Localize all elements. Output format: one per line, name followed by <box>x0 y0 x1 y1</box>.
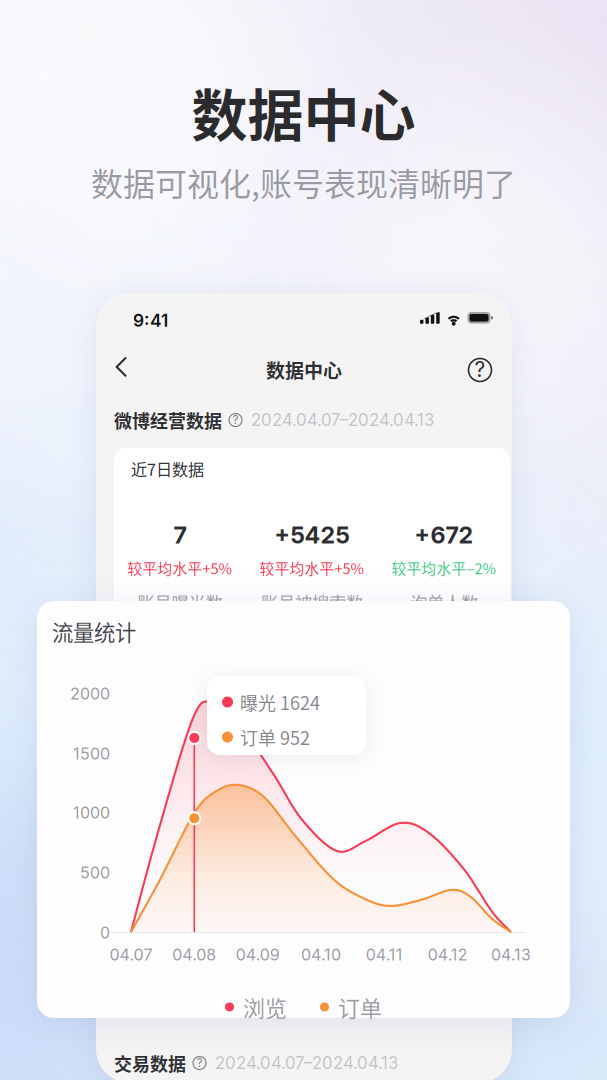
staticText: 2024.04.07–2024.04.13 <box>215 1053 398 1073</box>
staticText: 7 <box>173 521 186 549</box>
button[interactable]: Back <box>99 345 143 389</box>
staticText: ? <box>474 357 485 382</box>
staticText: 浏览 <box>243 991 287 1023</box>
staticText: 账号曝光数 <box>137 589 222 615</box>
staticText: 04.13 <box>491 945 531 964</box>
staticText: 0 <box>100 923 110 942</box>
staticText: 数据可视化,账号表现清晰明了 <box>91 159 516 205</box>
staticText: 04.08 <box>172 945 216 964</box>
staticText: 2024.04.07–2024.04.13 <box>251 410 434 430</box>
staticText: 1500 <box>73 744 110 763</box>
staticText: 订单 952 <box>240 724 310 750</box>
staticText: 订单 <box>338 991 382 1023</box>
staticText: 微博经营数据 <box>114 407 222 433</box>
button[interactable]: Help <box>458 348 502 392</box>
staticText: 近7日数据 <box>131 457 204 480</box>
staticText: 较平均水平+5% <box>259 557 364 578</box>
staticText: 流量统计 <box>52 616 136 647</box>
staticText: 04.12 <box>428 945 468 964</box>
staticText: 2000 <box>70 684 110 703</box>
staticText: 04.09 <box>236 945 280 964</box>
staticText: 交易数据 <box>114 1050 186 1076</box>
staticText: 询单人数 <box>410 589 478 615</box>
staticText: 数据中心 <box>266 356 342 384</box>
staticText: ? <box>196 1055 202 1070</box>
staticText: 1000 <box>73 803 110 822</box>
staticText: 04.11 <box>366 945 403 964</box>
staticText: 04.07 <box>109 945 152 964</box>
staticText: 9:41 <box>133 310 168 331</box>
staticText: +672 <box>414 521 473 549</box>
staticText: 账号被搜索数 <box>261 589 363 615</box>
staticText: 数据中心 <box>191 71 415 152</box>
staticText: 04.10 <box>301 945 341 964</box>
staticText: +5425 <box>274 521 349 549</box>
staticText: 较平均水平–2% <box>391 557 496 578</box>
staticText: 500 <box>80 863 110 882</box>
staticText: 曝光 1624 <box>240 689 320 715</box>
staticText: ? <box>232 412 238 427</box>
staticText: 较平均水平+5% <box>127 557 232 578</box>
